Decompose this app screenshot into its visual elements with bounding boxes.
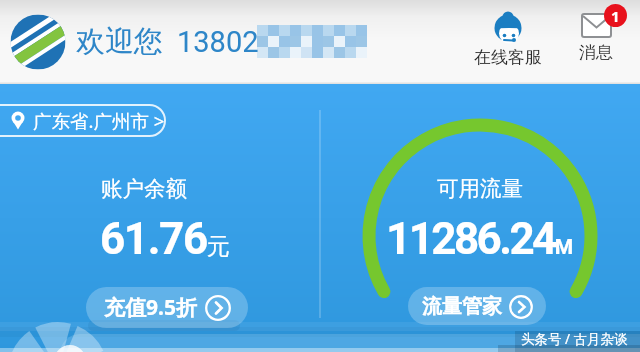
button[interactable]: 在线客服 bbox=[468, 11, 548, 68]
staticText: 在线客服 bbox=[474, 47, 542, 68]
staticText: 可用流量 bbox=[437, 175, 523, 202]
staticText: 充值9.5折 bbox=[104, 293, 197, 322]
button[interactable]: 流量管家 bbox=[408, 287, 546, 325]
staticText: 头条号 / 古月杂谈 bbox=[521, 330, 628, 348]
staticText: 61.76元 bbox=[100, 213, 230, 265]
staticText: 13802 bbox=[177, 25, 259, 59]
staticText: 欢迎您 bbox=[76, 23, 163, 60]
button[interactable]: 充值9.5折 bbox=[86, 287, 248, 328]
button[interactable]: 消息 bbox=[564, 13, 628, 63]
staticText: 流量管家 bbox=[422, 294, 502, 319]
staticText: 账户余额 bbox=[101, 175, 187, 202]
staticText: 广东省.广州市 > bbox=[33, 108, 165, 133]
staticText: 1 bbox=[611, 6, 620, 26]
staticText: 11286.24M bbox=[386, 213, 574, 265]
staticText: 消息 bbox=[579, 42, 613, 63]
button[interactable]: 广东省.广州市 > bbox=[0, 104, 166, 137]
